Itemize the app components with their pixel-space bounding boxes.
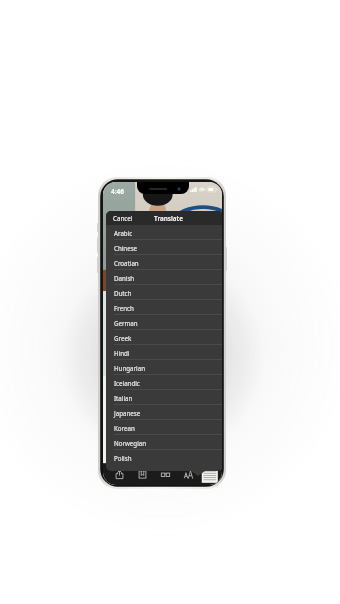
- staticText: Italian: [114, 394, 133, 402]
- button[interactable]: Bookmarks: [131, 463, 154, 485]
- button[interactable]: Chinese: [106, 240, 222, 255]
- staticText: Dutch: [114, 289, 132, 297]
- staticText: Chinese: [114, 244, 138, 252]
- staticText: Greek: [114, 334, 132, 342]
- staticText: Korean: [114, 424, 135, 432]
- staticText: German: [114, 319, 138, 327]
- staticText: Hindi: [114, 349, 130, 357]
- staticText: Translate: [154, 214, 183, 223]
- button[interactable]: Arabic: [106, 225, 222, 240]
- button[interactable]: Polish: [106, 450, 222, 465]
- staticText: Cancel: [113, 214, 133, 222]
- button[interactable]: Share: [107, 463, 131, 485]
- staticText: 4:46: [111, 187, 124, 196]
- button[interactable]: Croatian: [106, 255, 222, 270]
- button[interactable]: Text size: [177, 463, 200, 485]
- staticText: Polish: [114, 454, 132, 462]
- button[interactable]: Reader: [154, 463, 177, 485]
- staticText: Japanese: [114, 409, 141, 417]
- button[interactable]: Danish: [106, 270, 222, 285]
- button[interactable]: Dutch: [106, 285, 222, 300]
- button[interactable]: Icelandic: [106, 375, 222, 390]
- staticText: Norwegian: [114, 439, 147, 447]
- button[interactable]: German: [106, 315, 222, 330]
- button[interactable]: Korean: [106, 420, 222, 435]
- staticText: Danish: [114, 274, 135, 282]
- button[interactable]: Japanese: [106, 405, 222, 420]
- button[interactable]: Norwegian: [106, 435, 222, 450]
- button[interactable]: Greek: [106, 330, 222, 345]
- button[interactable]: Back: [105, 208, 118, 221]
- staticText: Icelandic: [114, 379, 140, 387]
- staticText: Croatian: [114, 259, 139, 267]
- button[interactable]: Italian: [106, 390, 222, 405]
- button[interactable]: Hungarian: [106, 360, 222, 375]
- staticText: Arabic: [114, 229, 133, 237]
- button[interactable]: Hindi: [106, 345, 222, 360]
- staticText: Hungarian: [114, 364, 145, 372]
- button[interactable]: French: [106, 300, 222, 315]
- staticText: French: [114, 304, 134, 312]
- button[interactable]: Cancel: [113, 211, 133, 225]
